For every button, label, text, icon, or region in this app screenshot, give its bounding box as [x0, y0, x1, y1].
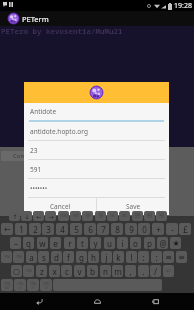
- staticText: +: [156, 224, 161, 235]
- button[interactable]: s: [38, 251, 49, 263]
- button[interactable]: p: [144, 237, 155, 249]
- button[interactable]: y: [90, 237, 101, 249]
- button[interactable]: Home: [86, 293, 108, 310]
- button[interactable]: d: [51, 251, 62, 263]
- button[interactable]: PRV SCR: [132, 211, 143, 221]
- button[interactable]: +: [152, 223, 164, 235]
- button[interactable]: i: [117, 237, 128, 249]
- button[interactable]: ≡: [176, 251, 187, 263]
- staticText: £: [183, 224, 188, 235]
- button[interactable]: .: [138, 265, 149, 277]
- button[interactable]: CTRL S: [14, 279, 26, 291]
- button[interactable]: SYM: [13, 251, 24, 263]
- button[interactable]: 6: [84, 223, 96, 235]
- button[interactable]: e: [50, 237, 61, 249]
- button[interactable]: @: [157, 237, 168, 249]
- button[interactable]: o: [130, 237, 141, 249]
- button[interactable]: CTRL ALT: [1, 279, 13, 291]
- button[interactable]: n: [100, 265, 111, 277]
- button[interactable]: f: [63, 251, 74, 263]
- staticText: CTRL C: [30, 282, 37, 289]
- staticText: ,: [129, 266, 132, 277]
- button[interactable]: –: [10, 237, 21, 249]
- staticText: ↓: [24, 213, 30, 220]
- button[interactable]: z: [36, 265, 47, 277]
- button[interactable]: Antidote: [24, 103, 169, 122]
- button[interactable]: 1: [15, 223, 27, 235]
- button[interactable]: NXT CLS: [156, 211, 167, 221]
- staticText: g: [79, 252, 84, 263]
- button[interactable]: 9: [125, 223, 137, 235]
- button[interactable]: NXT SCR: [144, 211, 155, 221]
- button[interactable]: w: [37, 237, 48, 249]
- staticText: o: [133, 238, 138, 249]
- button[interactable]: 591: [24, 160, 169, 179]
- button[interactable]: DEL: [119, 211, 130, 221]
- staticText: ←: [36, 213, 42, 220]
- button[interactable]: t: [77, 237, 88, 249]
- button[interactable]: ↑: [9, 211, 20, 221]
- button[interactable]: 8: [111, 223, 123, 235]
- button[interactable]: Save: [97, 198, 169, 215]
- button[interactable]: antidote.hopto.org: [24, 122, 169, 141]
- button[interactable]: Recents: [144, 293, 166, 310]
- button[interactable]: k: [113, 251, 124, 263]
- button[interactable]: ○: [11, 265, 22, 277]
- button[interactable]: c: [61, 265, 72, 277]
- button[interactable]: £: [179, 223, 191, 235]
- staticText: ALT: [166, 269, 171, 273]
- button[interactable]: HOME: [58, 211, 69, 221]
- button[interactable]: END: [70, 211, 81, 221]
- button[interactable]: r: [64, 237, 75, 249]
- button[interactable]: ←: [1, 223, 13, 235]
- button[interactable]: q: [23, 237, 34, 249]
- staticText: @: [159, 238, 167, 249]
- button[interactable]: CTRL D: [40, 279, 52, 291]
- button[interactable]: l: [126, 251, 137, 263]
- button[interactable]: ↓: [21, 211, 32, 221]
- button[interactable]: v: [74, 265, 85, 277]
- staticText: y: [93, 238, 98, 249]
- staticText: q: [26, 238, 31, 249]
- button[interactable]: /: [150, 265, 161, 277]
- button[interactable]: 23: [24, 141, 169, 160]
- staticText: CTRL ALT: [4, 282, 11, 289]
- button[interactable]: •••••••: [24, 179, 169, 198]
- button[interactable]: 5: [70, 223, 82, 235]
- button[interactable]: 4: [56, 223, 68, 235]
- button[interactable]: INS: [107, 211, 118, 221]
- button[interactable]: 7: [97, 223, 109, 235]
- staticText: PRV SCR: [135, 213, 140, 219]
- button[interactable]: SYM: [1, 251, 12, 263]
- button[interactable]: Back: [28, 293, 50, 310]
- button[interactable]: ←: [33, 211, 44, 221]
- button[interactable]: PG UP: [82, 211, 93, 221]
- button[interactable]: 0: [138, 223, 150, 235]
- button[interactable]: Cancel: [24, 198, 96, 215]
- button[interactable]: a: [26, 251, 37, 263]
- button[interactable]: :: [138, 251, 149, 263]
- button[interactable]: -: [166, 223, 178, 235]
- button[interactable]: :: [151, 251, 162, 263]
- button[interactable]: Connect: [1, 151, 49, 161]
- button[interactable]: →: [45, 211, 56, 221]
- button[interactable]: g: [76, 251, 87, 263]
- staticText: 23: [30, 146, 38, 155]
- button[interactable]: b: [87, 265, 98, 277]
- button[interactable]: SYM: [23, 265, 34, 277]
- button[interactable]: PG DN: [95, 211, 106, 221]
- button[interactable]: ALT: [163, 265, 174, 277]
- staticText: u: [107, 238, 112, 249]
- button[interactable]: 3: [42, 223, 54, 235]
- button[interactable]: ,: [125, 265, 136, 277]
- button[interactable]: h: [88, 251, 99, 263]
- button[interactable]: u: [104, 237, 115, 249]
- button[interactable]: CTRL C: [27, 279, 39, 291]
- button[interactable]: m: [112, 265, 123, 277]
- button[interactable]: x: [49, 265, 60, 277]
- button[interactable]: ≡: [163, 251, 174, 263]
- button[interactable]: j: [101, 251, 112, 263]
- button[interactable]: 2: [29, 223, 41, 235]
- button[interactable]: ★: [170, 237, 181, 249]
